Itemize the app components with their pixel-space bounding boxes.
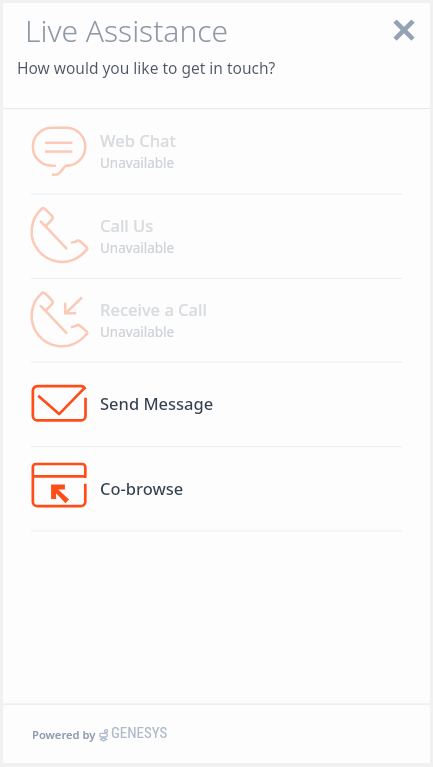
staticText: GENESYS <box>111 724 168 742</box>
button[interactable]: Call Us <box>3 193 430 277</box>
staticText: Live Assistance <box>25 10 229 51</box>
button[interactable]: Close <box>372 8 418 54</box>
button[interactable]: Receive a Call <box>3 277 430 361</box>
staticText: Unavailable <box>100 323 175 341</box>
button[interactable]: Web Chat <box>3 108 430 193</box>
staticText: How would you like to get in touch? <box>17 57 276 78</box>
staticText: Unavailable <box>100 154 175 172</box>
staticText: Unavailable <box>100 239 175 257</box>
staticText: Powered by <box>32 727 96 742</box>
button[interactable]: Co-browse <box>3 445 430 530</box>
staticText: Web Chat <box>100 129 176 151</box>
button[interactable]: Send Message <box>3 361 430 445</box>
staticText: Call Us <box>100 214 154 236</box>
staticText: Receive a Call <box>100 298 207 320</box>
staticText: Co-browse <box>100 477 184 499</box>
staticText: Send Message <box>100 392 214 414</box>
